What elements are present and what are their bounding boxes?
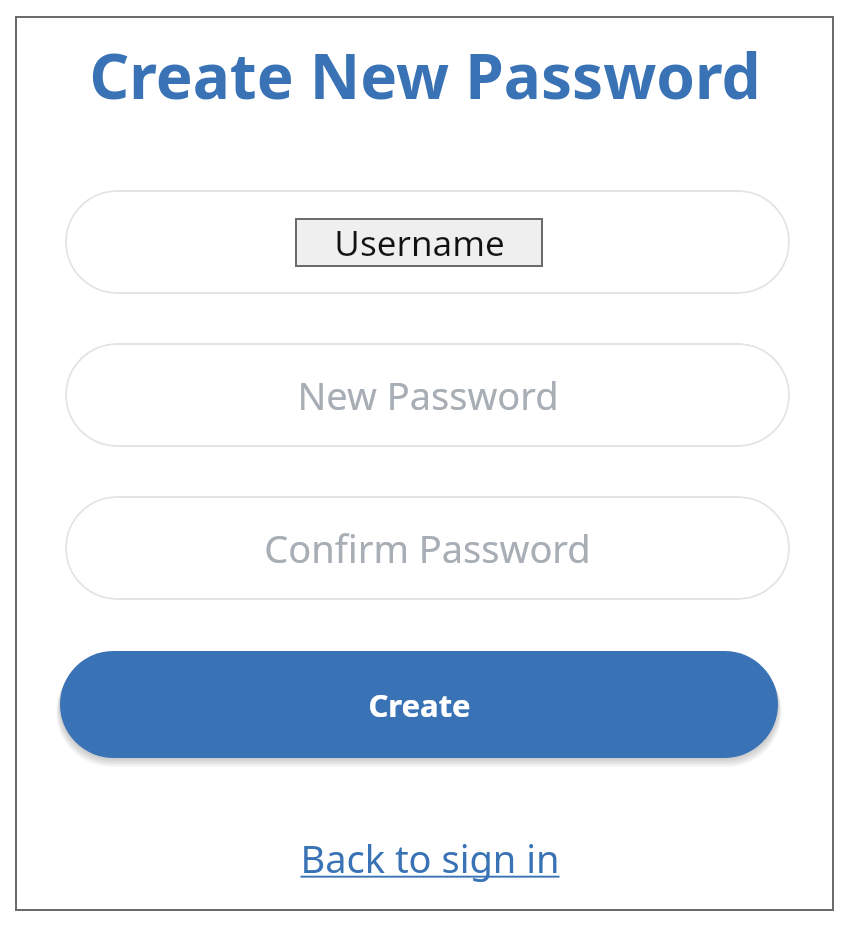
staticText: Confirm Password bbox=[264, 522, 591, 574]
button[interactable]: Username bbox=[65, 190, 790, 294]
button[interactable]: Confirm Password bbox=[65, 496, 790, 600]
staticText: Username bbox=[334, 219, 505, 267]
button[interactable]: Create bbox=[60, 651, 778, 758]
button[interactable]: Back to sign in bbox=[290, 828, 570, 888]
staticText: Create New Password bbox=[89, 33, 761, 117]
staticText: Back to sign in bbox=[300, 832, 560, 884]
staticText: Create bbox=[368, 684, 471, 726]
button[interactable]: New Password bbox=[65, 343, 790, 447]
staticText: New Password bbox=[297, 369, 559, 421]
